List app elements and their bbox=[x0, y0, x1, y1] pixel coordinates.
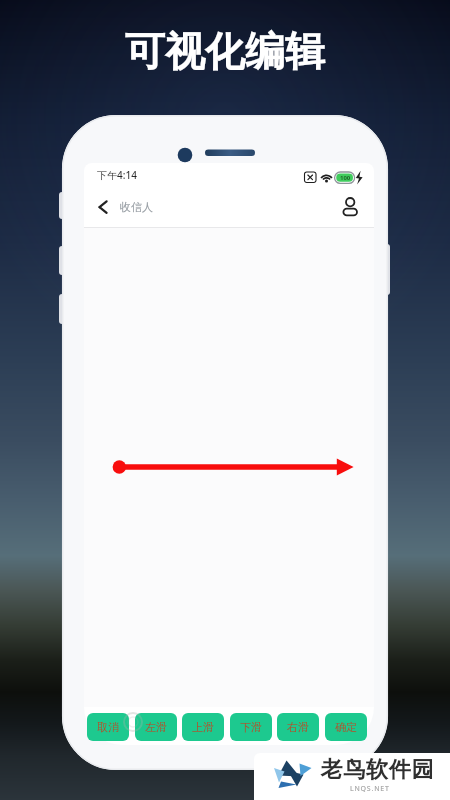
button[interactable]: 确定 bbox=[325, 713, 367, 741]
staticText: 确定 bbox=[335, 720, 357, 734]
staticText: 取消 bbox=[97, 720, 119, 734]
staticText: 下午4:14 bbox=[97, 168, 137, 182]
staticText: 可视化编辑 bbox=[125, 26, 325, 76]
staticText: 右滑 bbox=[287, 720, 309, 734]
staticText: 收信人 bbox=[120, 200, 153, 214]
staticText: 100 bbox=[340, 174, 351, 182]
staticText: 下滑 bbox=[240, 720, 262, 734]
button[interactable]: 取消 bbox=[87, 713, 129, 741]
staticText: LNQS.NET bbox=[350, 784, 390, 794]
staticText: 左滑 bbox=[145, 720, 167, 734]
button[interactable]: 上滑 bbox=[182, 713, 224, 741]
button[interactable]: 左滑 bbox=[135, 713, 177, 741]
button[interactable]: 下滑 bbox=[230, 713, 272, 741]
staticText: 老鸟软件园 bbox=[320, 756, 434, 784]
button[interactable]: 右滑 bbox=[277, 713, 319, 741]
staticText: 上滑 bbox=[192, 720, 214, 734]
